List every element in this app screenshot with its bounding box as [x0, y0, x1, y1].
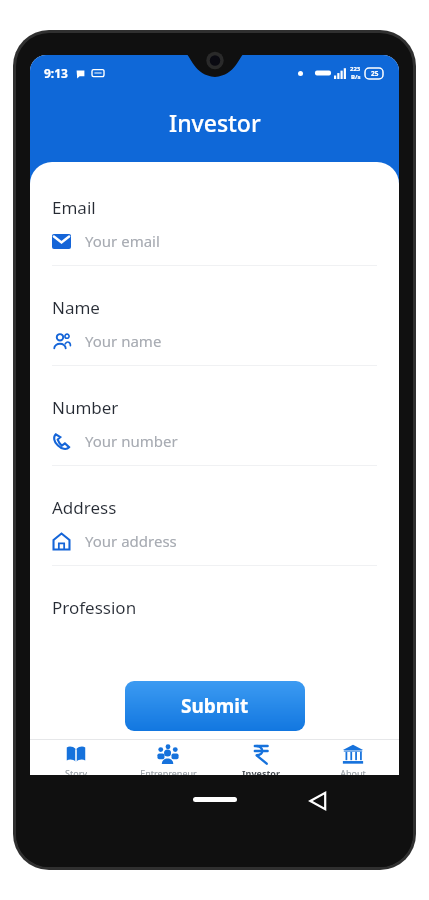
staticText: Investor [242, 767, 280, 779]
staticText: Submit [181, 693, 249, 719]
button[interactable]: Entrepreneur [122, 743, 214, 787]
staticText: Profession [52, 596, 137, 619]
staticText: 9:13 [44, 65, 68, 81]
button[interactable]: Name [52, 296, 377, 366]
staticText: Email [52, 196, 96, 219]
button[interactable]: Story [30, 743, 122, 787]
staticText: Entrepreneur [140, 767, 197, 779]
staticText: Your email [85, 231, 160, 251]
staticText: Address [52, 496, 117, 519]
staticText: Number [52, 396, 119, 419]
staticText: Name [52, 296, 100, 319]
button[interactable]: Submit [125, 681, 305, 731]
staticText: Your address [85, 531, 177, 551]
staticText: Investor [169, 107, 261, 138]
staticText: About [340, 767, 366, 779]
button[interactable]: Investor [215, 743, 307, 787]
button[interactable]: Number [52, 396, 377, 466]
staticText: 25 [371, 69, 379, 78]
button[interactable]: Address [52, 496, 377, 566]
staticText: Story [65, 767, 87, 779]
button[interactable]: About [307, 743, 399, 787]
staticText: Your number [85, 431, 178, 451]
staticText: Your name [85, 331, 162, 351]
button[interactable]: Email [52, 196, 377, 266]
staticText: B/s [351, 73, 361, 81]
staticText: 223 [350, 65, 361, 73]
other: Home [193, 797, 237, 802]
button[interactable]: Back [306, 789, 330, 813]
